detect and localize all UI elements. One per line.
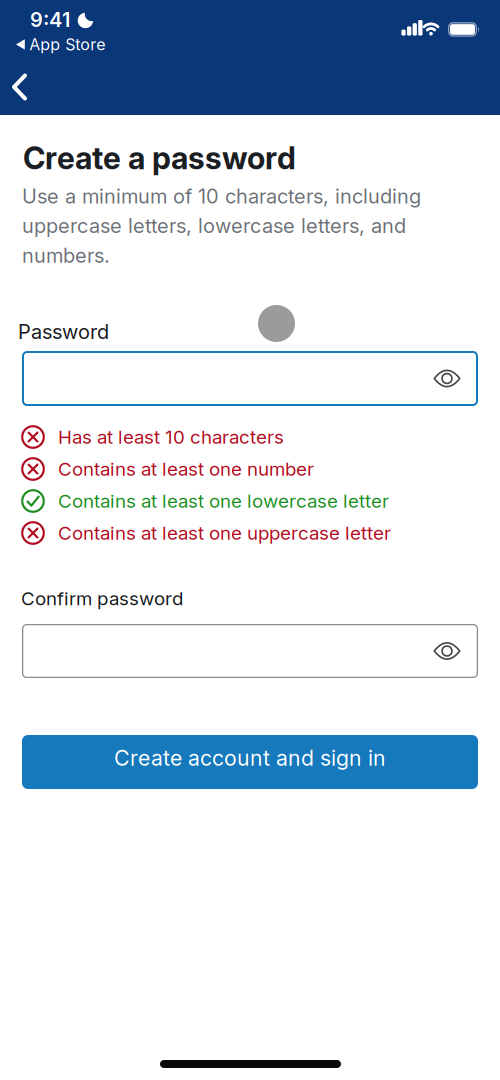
button[interactable]: App Store	[16, 35, 105, 54]
staticText: Contains at least one uppercase letter	[58, 522, 391, 544]
staticText: Confirm password	[21, 587, 183, 609]
staticText: App Store	[29, 35, 105, 54]
button[interactable]: Back	[7, 68, 32, 106]
staticText: Contains at least one lowercase letter	[58, 490, 389, 512]
staticText: Use a minimum of 10 characters, includin…	[22, 184, 421, 267]
button[interactable]: Password	[22, 351, 478, 406]
button[interactable]: Show password	[425, 362, 469, 395]
staticText: Has at least 10 characters	[58, 426, 284, 448]
staticText: Password	[18, 320, 109, 344]
staticText: 9:41	[30, 8, 70, 32]
button[interactable]: Show password	[425, 635, 469, 667]
staticText: Create a password	[23, 140, 296, 176]
staticText: Create account and sign in	[114, 745, 386, 771]
button[interactable]: Confirm password	[22, 624, 478, 678]
staticText: Contains at least one number	[58, 458, 314, 480]
button[interactable]: Create account and sign in	[22, 735, 478, 789]
